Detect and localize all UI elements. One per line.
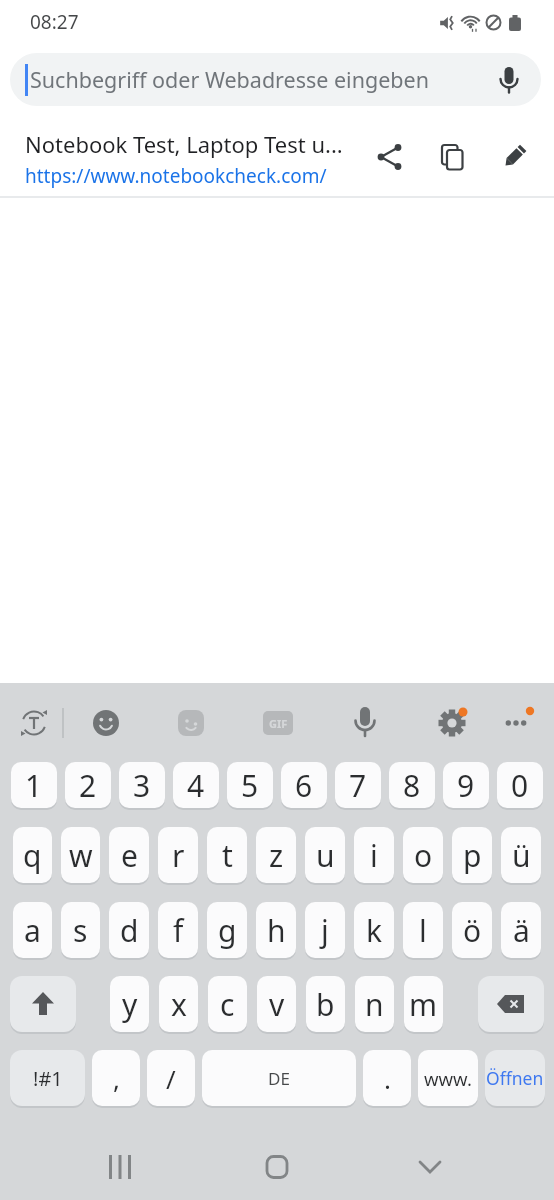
staticText: www. [424,1066,472,1091]
staticText: 1 [25,765,43,806]
button[interactable]: f [158,902,198,958]
button[interactable]: DE [202,1050,356,1106]
button[interactable]: 6 [281,762,327,808]
button[interactable]: 4 [173,762,219,808]
button[interactable]: r [158,827,198,883]
staticText: u [316,835,335,876]
button[interactable] [416,1153,444,1181]
button[interactable]: n [355,976,394,1032]
button[interactable]: Notebook Test, Laptop Test u... [0,106,554,196]
staticText: !#1 [33,1065,63,1092]
button[interactable] [478,976,544,1032]
button[interactable]: p [452,827,492,883]
button[interactable]: 8 [389,762,435,808]
staticText: Öffnen [486,1066,544,1090]
button[interactable]: k [354,902,394,958]
button[interactable]: 0 [497,762,543,808]
staticText: Notebook Test, Laptop Test u... [25,129,343,159]
staticText: b [316,984,335,1025]
staticText: 4 [187,765,205,806]
staticText: n [365,984,384,1025]
button[interactable]: ö [452,902,492,958]
button[interactable]: / [147,1050,195,1106]
staticText: o [414,835,433,876]
button[interactable]: b [306,976,345,1032]
staticText: d [120,910,139,951]
button[interactable]: www. [418,1050,478,1106]
button[interactable]: ü [501,827,541,883]
button[interactable] [10,976,76,1032]
button[interactable]: 9 [443,762,489,808]
button[interactable]: z [256,827,296,883]
staticText: h [267,910,286,951]
button[interactable]: a [13,902,52,958]
button[interactable]: y [110,976,149,1032]
button[interactable]: s [61,902,100,958]
button[interactable] [106,1153,134,1181]
staticText: GIF [269,716,288,731]
staticText: k [366,910,383,951]
button[interactable]: i [354,827,394,883]
staticText: 0 [511,765,529,806]
staticText: a [24,910,41,951]
button[interactable]: h [256,902,296,958]
button[interactable] [92,709,120,737]
staticText: 7 [349,765,367,806]
button[interactable]: j [305,902,345,958]
staticText: 3 [133,765,151,806]
staticText: ü [512,835,531,876]
button[interactable] [348,706,382,740]
button[interactable]: v [257,976,296,1032]
staticText: 6 [295,765,313,806]
button[interactable]: q [13,827,52,883]
button[interactable] [498,705,534,741]
button[interactable] [18,707,50,739]
staticText: 5 [241,765,259,806]
staticText: s [73,910,88,951]
button[interactable]: g [207,902,247,958]
staticText: e [121,835,138,876]
staticText: Suchbegriff oder Webadresse eingeben [30,65,429,94]
staticText: q [23,835,42,876]
button[interactable]: m [404,976,443,1032]
button[interactable] [439,144,465,170]
button[interactable]: c [208,976,247,1032]
button[interactable]: e [109,827,149,883]
staticText: z [269,835,284,876]
button[interactable]: w [61,827,100,883]
button[interactable]: ä [501,902,541,958]
button[interactable]: x [159,976,198,1032]
staticText: ä [513,910,530,951]
button[interactable]: l [403,902,443,958]
button[interactable]: , [92,1050,140,1106]
staticText: v [269,984,285,1025]
staticText: y [122,984,138,1025]
staticText: p [463,835,482,876]
button[interactable]: d [109,902,149,958]
button[interactable]: 3 [119,762,165,808]
staticText: c [220,984,235,1025]
button[interactable] [177,709,205,737]
button[interactable]: Suchbegriff oder Webadresse eingeben [10,53,541,106]
staticText: 8 [403,765,421,806]
button[interactable] [377,144,403,170]
button[interactable]: 7 [335,762,381,808]
button[interactable]: 1 [11,762,57,808]
button[interactable]: u [305,827,345,883]
button[interactable]: 2 [65,762,111,808]
button[interactable]: t [207,827,247,883]
staticText: l [419,910,427,951]
button[interactable]: o [403,827,443,883]
staticText: t [222,835,233,876]
staticText: f [173,910,184,951]
button[interactable]: !#1 [10,1050,85,1106]
staticText: / [166,1061,176,1096]
staticText: i [370,835,378,876]
button[interactable] [263,1153,291,1181]
button[interactable] [434,705,470,741]
button[interactable]: GIF [263,711,293,735]
button[interactable]: 5 [227,762,273,808]
button[interactable] [501,144,527,170]
button[interactable]: . [363,1050,411,1106]
button[interactable]: Öffnen [485,1050,545,1106]
